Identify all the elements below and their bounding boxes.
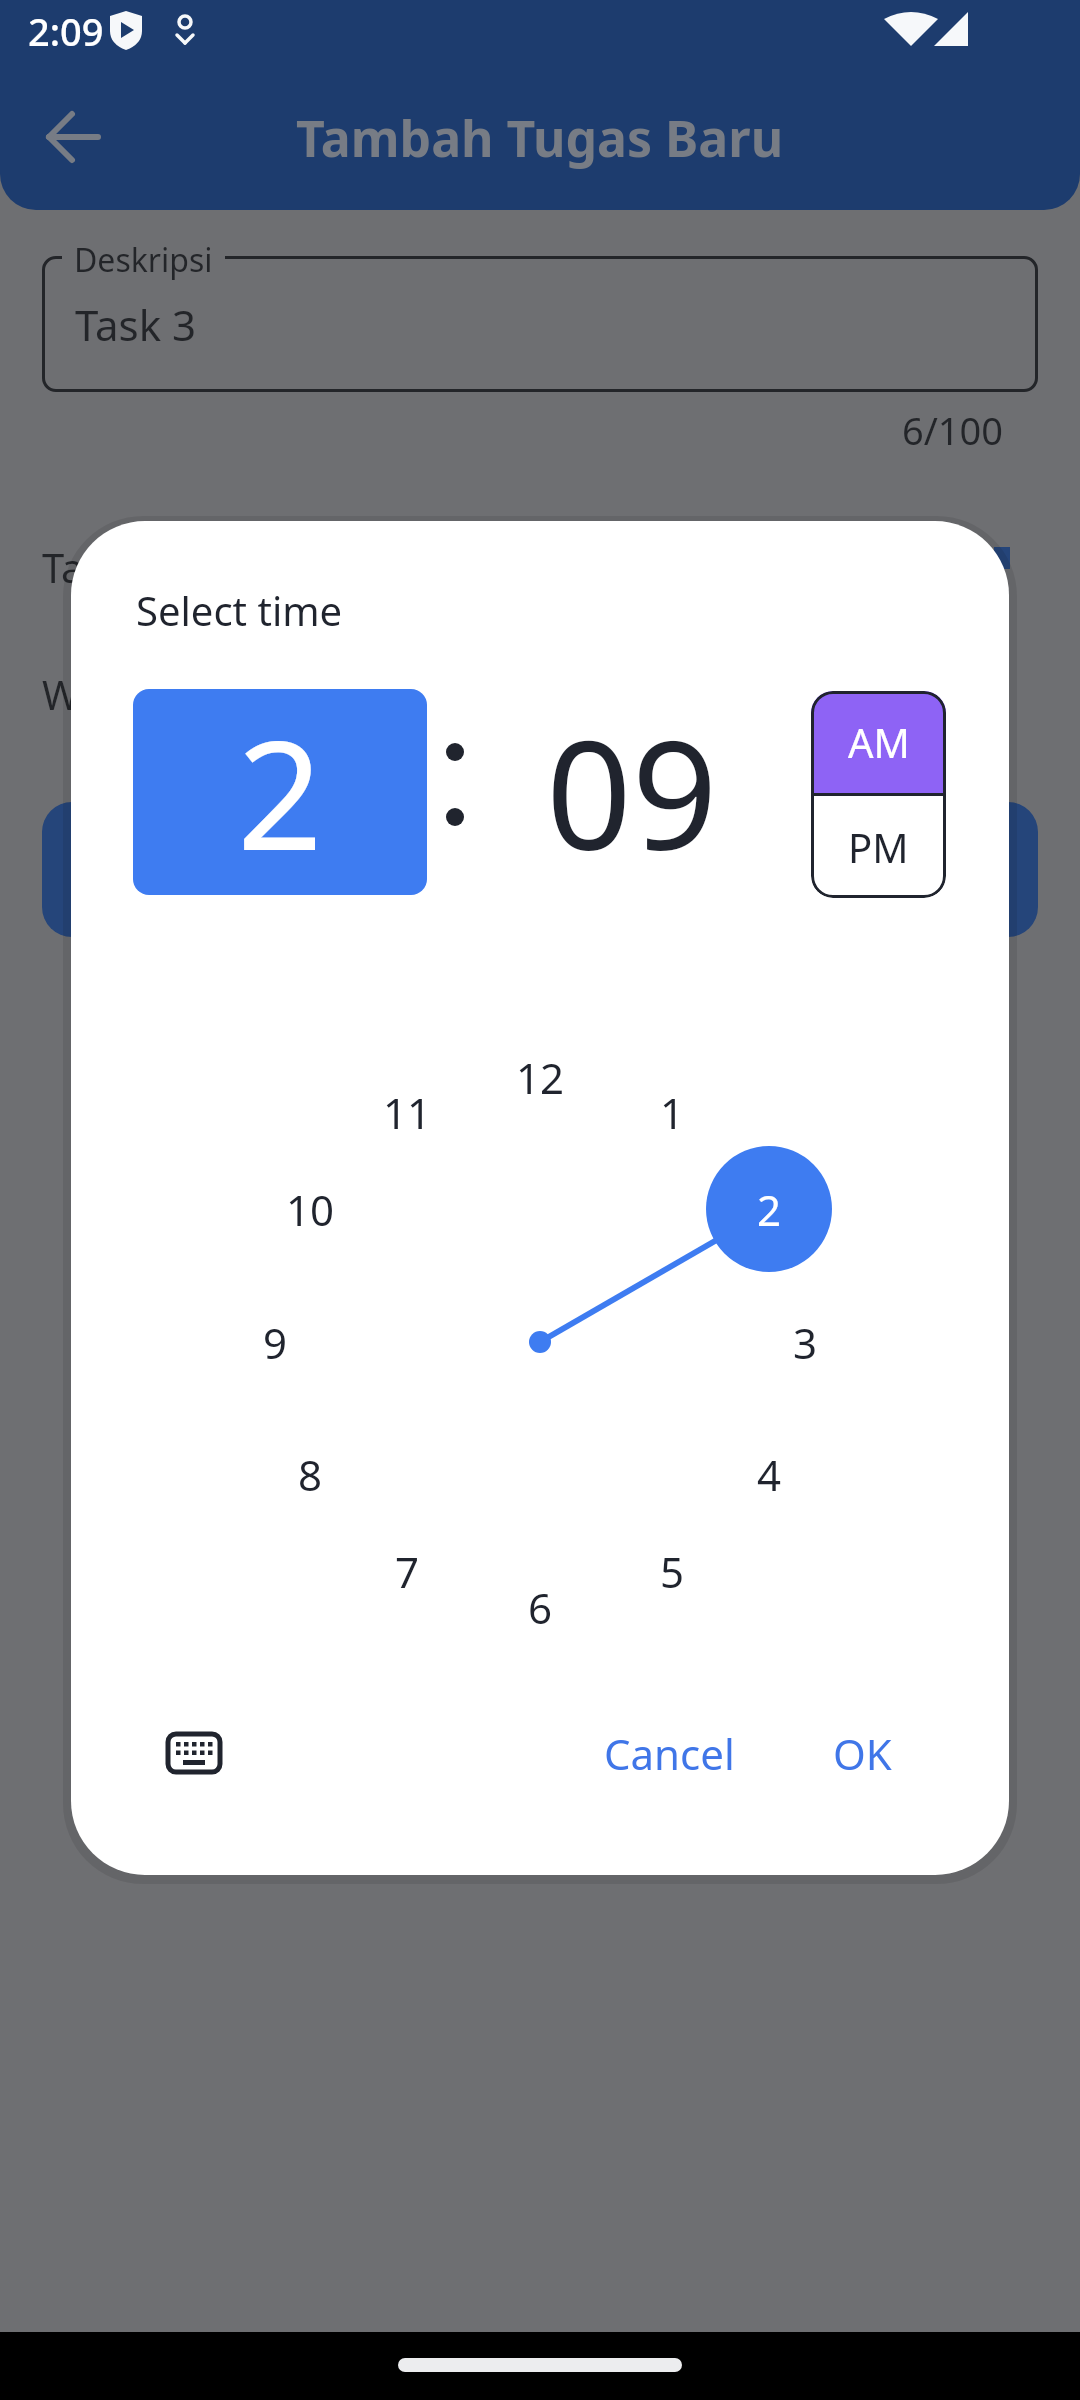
button[interactable] (30, 94, 116, 180)
staticText: Tanggal (42, 540, 191, 594)
staticText: OK (833, 1725, 892, 1782)
staticText: 2 (757, 1181, 782, 1238)
staticText: 1 (660, 1084, 685, 1141)
button[interactable]: AM (811, 691, 946, 793)
staticText: Cancel (604, 1725, 735, 1782)
staticText: 09 (546, 690, 718, 894)
staticText: Task 3 (75, 296, 197, 353)
staticText: 12 (516, 1049, 565, 1106)
button[interactable] (42, 802, 1038, 937)
staticText: AM (848, 715, 910, 769)
staticText: 8 (298, 1446, 323, 1503)
button[interactable]: PM (811, 796, 946, 898)
button[interactable]: Cancel (599, 1720, 739, 1786)
staticText: Select time (136, 583, 343, 637)
staticText: Deskripsi (74, 238, 213, 282)
staticText: Waktu (42, 667, 162, 721)
button[interactable]: 09 (517, 689, 747, 895)
staticText: 11 (383, 1084, 432, 1141)
button[interactable]: 2 (133, 689, 427, 895)
staticText: 2 (237, 690, 323, 894)
staticText: 10 (286, 1181, 335, 1238)
staticText: PM (848, 820, 909, 874)
staticText: 9 (263, 1314, 288, 1371)
button[interactable] (42, 256, 1038, 392)
staticText: 6/100 (902, 404, 1004, 456)
staticText: 6 (528, 1579, 553, 1636)
button[interactable]: OK (820, 1720, 904, 1786)
staticText: 3 (793, 1314, 818, 1371)
button[interactable] (152, 1711, 236, 1795)
button[interactable]: 2 (706, 1146, 832, 1272)
staticText: 2:09 (28, 5, 104, 57)
staticText: Tambah Tugas Baru (296, 104, 784, 172)
staticText: 5 (660, 1543, 685, 1600)
staticText: 7 (395, 1543, 420, 1600)
staticText: 4 (757, 1446, 782, 1503)
